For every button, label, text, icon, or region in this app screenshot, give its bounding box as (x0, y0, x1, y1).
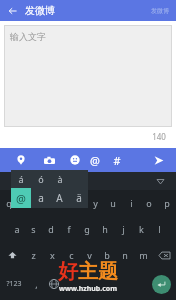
button[interactable]: u (104, 190, 122, 216)
button[interactable]: x (43, 242, 62, 268)
button[interactable]: j (114, 216, 132, 242)
staticText: j (122, 223, 125, 235)
button[interactable]: Back (5, 3, 21, 19)
staticText: 140 (152, 131, 166, 142)
button[interactable]: g (78, 216, 96, 242)
button[interactable]: ä (69, 188, 88, 208)
staticText: ?123 (6, 279, 22, 289)
button[interactable]: á (11, 170, 31, 188)
button[interactable]: A (50, 188, 69, 208)
button[interactable]: h (96, 216, 114, 242)
staticText: u (110, 197, 116, 209)
staticText: 输入文字 (10, 31, 46, 42)
button[interactable]: n (116, 242, 134, 268)
button[interactable]: Send (148, 148, 168, 172)
button[interactable]: à (50, 170, 69, 188)
staticText: A (56, 191, 63, 205)
button[interactable]: Backspace (152, 242, 176, 268)
staticText: p (164, 197, 170, 209)
button[interactable]: p (158, 190, 176, 216)
staticText: b (104, 249, 110, 261)
staticText: à (57, 173, 63, 185)
staticText: s (31, 223, 36, 235)
staticText: o (146, 197, 152, 209)
button[interactable]: # (108, 148, 126, 172)
staticText: ä (76, 191, 82, 205)
button[interactable]: o (140, 190, 158, 216)
button[interactable]: s (25, 216, 42, 242)
button[interactable]: r (51, 190, 68, 216)
button[interactable]: @ (86, 148, 104, 172)
staticText: 发微博 (25, 4, 55, 17)
staticText: á (18, 173, 24, 185)
staticText: www.hzhub.com (59, 284, 117, 294)
staticText: ó (38, 173, 44, 185)
staticText: i (130, 197, 133, 209)
staticText: c (69, 249, 74, 261)
button[interactable]: f (60, 216, 78, 242)
button[interactable]: Space (64, 268, 146, 300)
button[interactable]: More suggestions (154, 175, 166, 187)
button[interactable]: @ (11, 188, 31, 208)
staticText: @ (90, 153, 100, 168)
staticText: 好 (58, 259, 78, 284)
staticText: 主题 (78, 259, 118, 284)
staticText: k (139, 223, 144, 235)
staticText: h (102, 223, 108, 235)
staticText: z (31, 249, 36, 261)
staticText: , (35, 278, 38, 290)
button[interactable]: Enter (146, 268, 176, 300)
button[interactable]: Shift (0, 242, 24, 268)
button[interactable]: q (0, 190, 17, 216)
staticText: q (6, 197, 12, 209)
button[interactable]: a (8, 216, 25, 242)
staticText: d (48, 223, 54, 235)
button[interactable]: Camera (40, 148, 58, 172)
button[interactable]: t (68, 190, 86, 216)
button[interactable]: , (28, 268, 44, 300)
staticText: g (84, 223, 90, 235)
staticText: e (40, 197, 46, 209)
staticText: 发微博 (151, 7, 169, 15)
button[interactable]: Emoji (66, 148, 84, 172)
button[interactable]: ó (31, 170, 50, 188)
staticText: m (139, 249, 148, 261)
button[interactable]: e (34, 190, 51, 216)
button[interactable]: z (24, 242, 43, 268)
button[interactable]: 发微博 (149, 7, 171, 15)
button[interactable]: y (86, 190, 104, 216)
button[interactable]: i (122, 190, 140, 216)
staticText: a (38, 191, 44, 205)
button[interactable]: k (132, 216, 150, 242)
button[interactable]: c (62, 242, 80, 268)
button[interactable]: b (98, 242, 116, 268)
staticText: v (87, 249, 92, 261)
staticText: n (122, 249, 128, 261)
staticText: w (22, 197, 30, 209)
staticText: @ (16, 191, 26, 206)
button[interactable]: v (80, 242, 98, 268)
button[interactable]: a (31, 188, 50, 208)
staticText: y (93, 197, 98, 209)
button[interactable]: ?123 (0, 268, 28, 300)
staticText: t (75, 197, 79, 209)
staticText: f (67, 223, 71, 235)
button[interactable]: d (42, 216, 60, 242)
staticText: r (58, 197, 62, 209)
button[interactable]: Change language (44, 268, 64, 300)
staticText: a (14, 223, 20, 235)
button[interactable]: 输入文字 (4, 25, 172, 127)
button[interactable]: m (134, 242, 152, 268)
button[interactable]: l (150, 216, 168, 242)
staticText: l (158, 223, 161, 235)
button[interactable]: w (17, 190, 34, 216)
staticText: x (50, 249, 55, 261)
staticText: # (113, 153, 121, 168)
button[interactable]: Location (12, 148, 30, 172)
